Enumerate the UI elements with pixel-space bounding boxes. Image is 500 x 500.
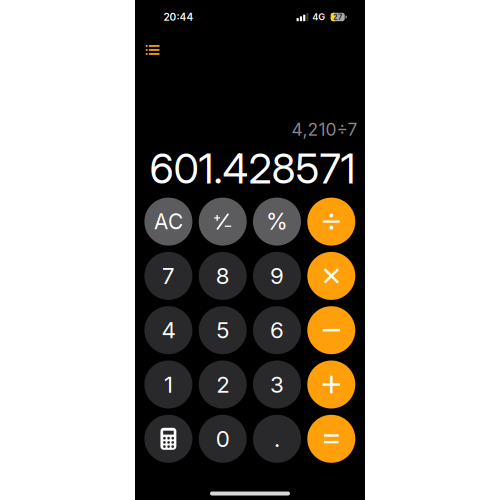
staticText: 7: [162, 262, 175, 289]
staticText: AC: [154, 209, 183, 234]
staticText: 3: [270, 371, 284, 398]
button[interactable]: %: [253, 198, 301, 246]
button[interactable]: Calculator: [144, 415, 192, 463]
staticText: 8: [216, 262, 230, 289]
button[interactable]: 3: [253, 360, 301, 408]
button[interactable]: Subtract: [307, 306, 355, 354]
staticText: 20:44: [164, 11, 194, 23]
button[interactable]: 5: [199, 306, 247, 354]
staticText: 4G: [312, 11, 325, 22]
button[interactable]: 7: [144, 252, 192, 300]
staticText: 2: [216, 371, 229, 398]
staticText: 27: [333, 12, 342, 21]
staticText: 5: [216, 317, 229, 344]
button[interactable]: .: [253, 415, 301, 463]
button[interactable]: Add: [307, 360, 355, 408]
button[interactable]: AC: [144, 198, 192, 246]
staticText: 9: [270, 262, 284, 289]
button[interactable]: 0: [199, 415, 247, 463]
staticText: 0: [216, 425, 230, 452]
button[interactable]: 8: [199, 252, 247, 300]
button[interactable]: Equals: [307, 415, 355, 463]
staticText: 1: [164, 371, 173, 398]
button[interactable]: 1: [144, 360, 192, 408]
button[interactable]: Plus minus: [199, 198, 247, 246]
button[interactable]: Multiply: [307, 252, 355, 300]
staticText: 4: [161, 317, 175, 344]
staticText: %: [266, 208, 288, 235]
staticText: 601.428571: [150, 143, 356, 193]
staticText: .: [274, 425, 280, 452]
button[interactable]: 4: [144, 306, 192, 354]
button[interactable]: Divide: [307, 198, 355, 246]
staticText: 6: [270, 317, 284, 344]
button[interactable]: History: [139, 38, 166, 62]
staticText: 4,210÷7: [291, 119, 357, 140]
button[interactable]: 9: [253, 252, 301, 300]
button[interactable]: 6: [253, 306, 301, 354]
button[interactable]: 2: [199, 360, 247, 408]
